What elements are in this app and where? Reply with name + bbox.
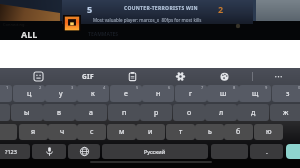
staticText: т xyxy=(179,127,183,137)
staticText: л xyxy=(219,108,224,118)
button[interactable]: е xyxy=(110,85,142,102)
button[interactable]: у xyxy=(45,85,77,102)
staticText: COUNTER-TERRORISTS WIN xyxy=(124,5,198,12)
staticText: н xyxy=(156,89,161,99)
staticText: 2 xyxy=(39,85,42,90)
staticText: ч xyxy=(60,127,65,137)
button[interactable]: ш xyxy=(207,85,239,102)
staticText: GIF xyxy=(82,72,95,81)
button[interactable]: я xyxy=(19,124,48,140)
button[interactable]: ч xyxy=(48,124,77,140)
staticText: з xyxy=(286,89,290,99)
staticText: 4 xyxy=(103,85,106,90)
staticText: ш xyxy=(220,89,227,99)
staticText: ь xyxy=(208,127,212,137)
staticText: 2 xyxy=(218,3,224,15)
staticText: 1 xyxy=(6,85,9,90)
button[interactable]: Change keyboard xyxy=(68,144,100,159)
staticText: у xyxy=(59,89,63,99)
staticText: ALL xyxy=(21,28,38,40)
button[interactable]: в xyxy=(43,104,75,121)
staticText: г xyxy=(189,89,193,99)
button[interactable]: и xyxy=(136,124,165,140)
staticText: ж xyxy=(283,108,289,118)
staticText: 9 xyxy=(265,85,268,90)
staticText: 7 xyxy=(201,85,204,90)
staticText: ы xyxy=(24,108,30,118)
button[interactable]: о xyxy=(173,104,205,121)
button[interactable]: р xyxy=(140,104,172,121)
button[interactable]: а xyxy=(75,104,107,121)
button[interactable]: Emoji xyxy=(30,68,46,85)
button[interactable]: ?123 xyxy=(0,144,30,159)
button[interactable]: б xyxy=(224,124,253,140)
staticText: 5 xyxy=(136,85,139,90)
button[interactable]: . xyxy=(250,144,283,159)
button[interactable]: м xyxy=(107,124,136,140)
button[interactable]: й xyxy=(0,85,12,102)
staticText: с xyxy=(90,127,94,137)
staticText: . xyxy=(266,147,268,157)
button[interactable]: Theme xyxy=(216,68,232,85)
button[interactable]: с xyxy=(77,124,106,140)
button[interactable]: г xyxy=(175,85,207,102)
button[interactable]: ц xyxy=(13,85,45,102)
staticText: е xyxy=(124,89,128,99)
staticText: Connecting... xyxy=(3,22,28,27)
button[interactable]: More options xyxy=(270,68,286,85)
staticText: я xyxy=(31,127,36,137)
staticText: и xyxy=(148,127,153,137)
button[interactable] xyxy=(211,144,248,159)
button[interactable]: н xyxy=(142,85,174,102)
button[interactable]: Voice input xyxy=(32,144,66,159)
button[interactable]: ь xyxy=(195,124,224,140)
staticText: о xyxy=(187,108,192,118)
staticText: TEAMMATES xyxy=(88,31,119,38)
button[interactable]: ж xyxy=(270,104,300,121)
staticText: р xyxy=(154,108,159,118)
button[interactable]: к xyxy=(77,85,109,102)
button[interactable]: з xyxy=(272,85,300,102)
staticText: ?123 xyxy=(5,148,17,155)
button[interactable]: Русский xyxy=(102,144,208,159)
staticText: Русский xyxy=(144,148,166,155)
staticText: 6 xyxy=(168,85,171,90)
button[interactable]: Settings xyxy=(172,68,188,85)
button[interactable]: ю xyxy=(254,124,283,140)
staticText: ц xyxy=(27,89,32,99)
button[interactable]: д xyxy=(237,104,269,121)
staticText: 5 xyxy=(87,3,93,15)
staticText: б xyxy=(236,127,241,137)
button[interactable]: т xyxy=(166,124,195,140)
staticText: к xyxy=(91,89,95,99)
button[interactable]: п xyxy=(108,104,140,121)
button[interactable]: Enter xyxy=(286,144,300,159)
staticText: 0 xyxy=(298,85,300,90)
staticText: ю xyxy=(266,127,272,137)
staticText: д xyxy=(251,108,256,118)
button[interactable] xyxy=(0,124,17,140)
staticText: п xyxy=(122,108,127,118)
staticText: щ xyxy=(252,89,259,99)
staticText: 8 xyxy=(233,85,236,90)
button[interactable]: Clipboard xyxy=(124,68,140,85)
staticText: м xyxy=(119,127,125,137)
button[interactable]: л xyxy=(205,104,237,121)
button[interactable]: щ xyxy=(239,85,271,102)
staticText: Most valuable player: marcos_x 80fps for… xyxy=(93,17,202,23)
button[interactable]: ф xyxy=(0,104,10,121)
staticText: в xyxy=(57,108,61,118)
staticText: 3 xyxy=(71,85,74,90)
button[interactable]: ы xyxy=(11,104,43,121)
staticText: а xyxy=(89,108,93,118)
button[interactable]: GIF xyxy=(74,68,102,85)
